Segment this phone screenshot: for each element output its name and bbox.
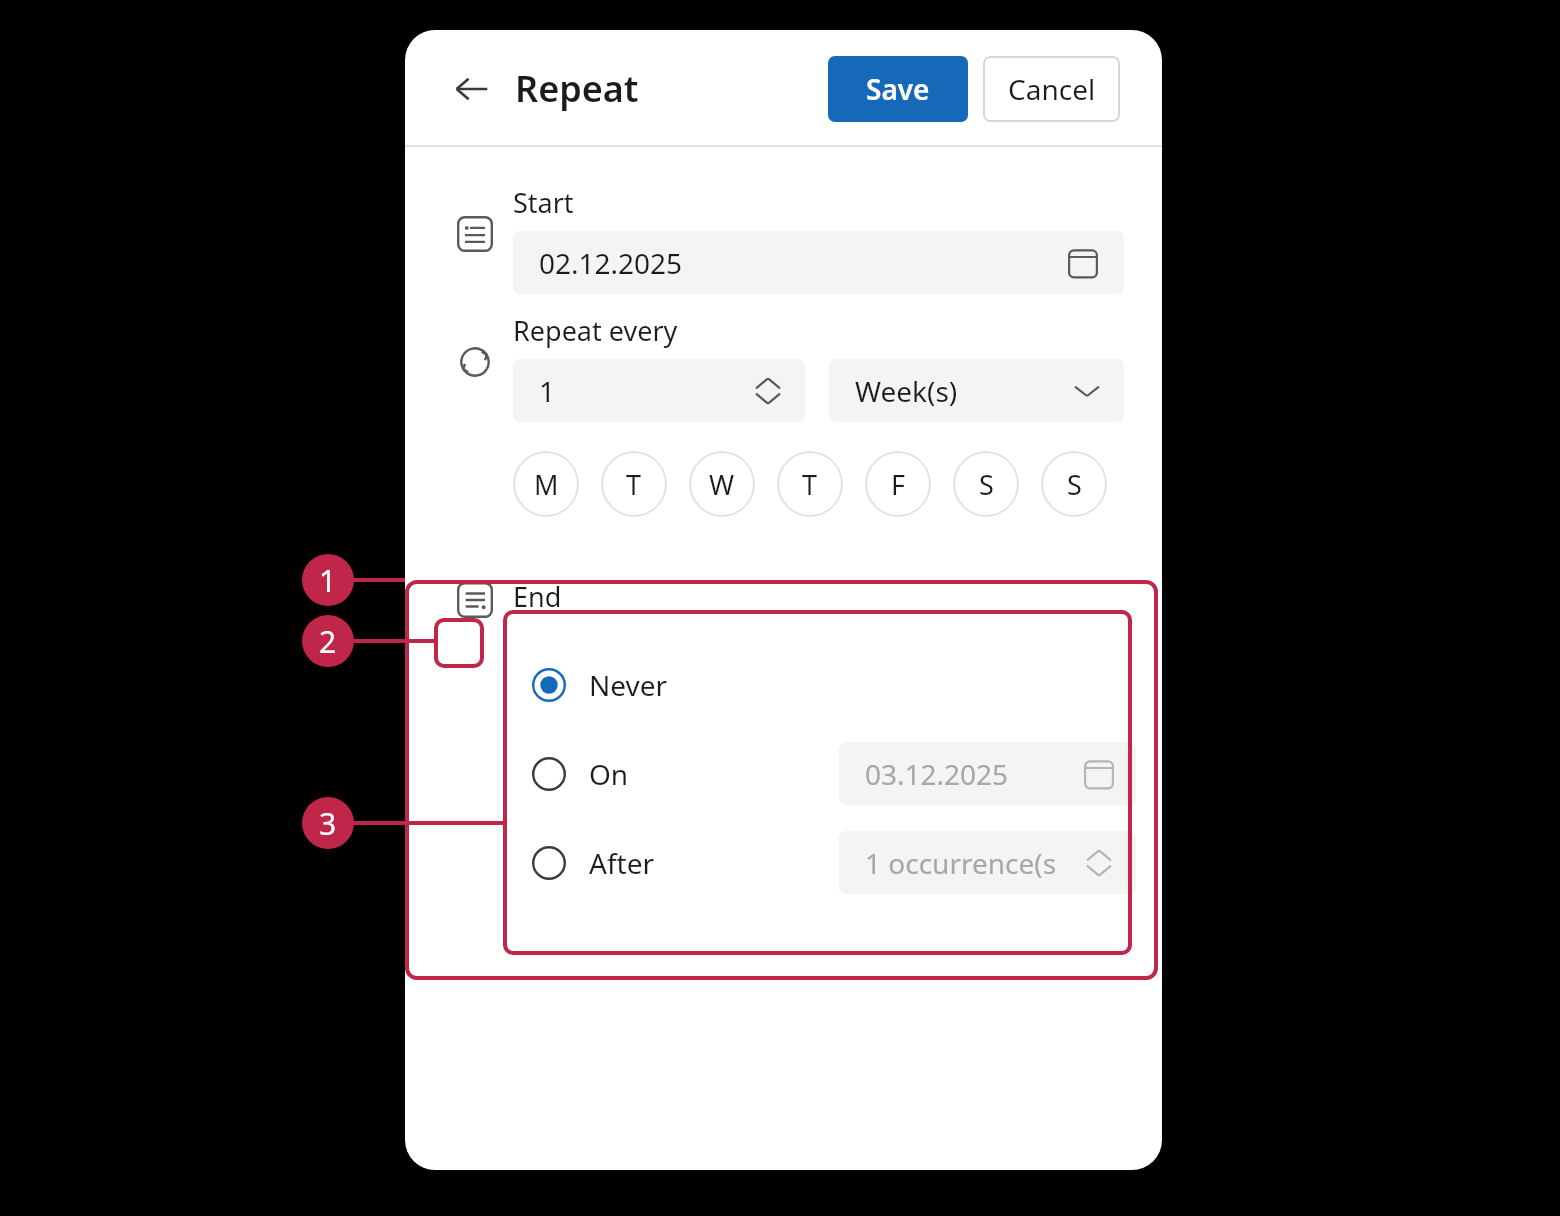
button[interactable]: 02.12.2025 bbox=[513, 231, 1124, 294]
button[interactable]: T bbox=[777, 451, 843, 517]
button[interactable]: W bbox=[689, 451, 755, 517]
staticText: 03.12.2025 bbox=[865, 755, 1009, 793]
staticText: W bbox=[709, 466, 735, 503]
staticText: 02.12.2025 bbox=[539, 244, 683, 282]
staticText: Repeat every bbox=[513, 312, 678, 349]
staticText: Save bbox=[866, 70, 930, 108]
button[interactable]: Never bbox=[513, 653, 1143, 716]
button[interactable]: Cancel bbox=[983, 56, 1120, 122]
button[interactable]: M bbox=[513, 451, 579, 517]
staticText: 3 bbox=[319, 803, 337, 844]
staticText: 2 bbox=[319, 621, 337, 662]
staticText: Cancel bbox=[1008, 70, 1096, 108]
staticText: 1 occurrence(s bbox=[865, 844, 1057, 882]
button[interactable]: On bbox=[513, 742, 1143, 805]
button[interactable]: Save bbox=[828, 56, 968, 122]
button[interactable]: 1 bbox=[513, 359, 805, 422]
staticText: 1 bbox=[539, 372, 556, 410]
staticText: End bbox=[513, 578, 562, 615]
staticText: F bbox=[891, 466, 906, 503]
staticText: M bbox=[534, 466, 559, 503]
staticText: S bbox=[979, 466, 994, 503]
staticText: Never bbox=[589, 666, 668, 704]
button[interactable]: S bbox=[1041, 451, 1107, 517]
staticText: After bbox=[589, 844, 654, 882]
staticText: T bbox=[802, 466, 818, 503]
staticText: 1 bbox=[319, 560, 337, 601]
button[interactable]: T bbox=[601, 451, 667, 517]
staticText: T bbox=[626, 466, 642, 503]
button[interactable]: F bbox=[865, 451, 931, 517]
button[interactable]: S bbox=[953, 451, 1019, 517]
button[interactable]: After bbox=[513, 831, 1143, 894]
staticText: S bbox=[1067, 466, 1082, 503]
button[interactable]: Week(s) bbox=[829, 359, 1124, 422]
button[interactable]: Back bbox=[449, 66, 495, 112]
staticText: On bbox=[589, 755, 629, 793]
staticText: Week(s) bbox=[855, 372, 958, 410]
staticText: Repeat bbox=[515, 64, 639, 113]
staticText: Start bbox=[513, 184, 574, 221]
